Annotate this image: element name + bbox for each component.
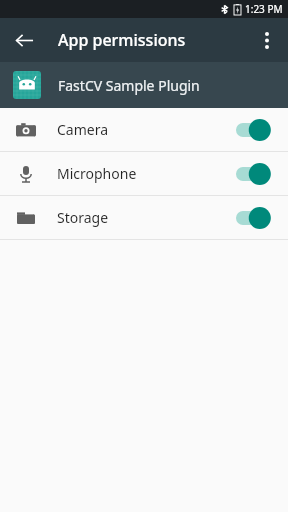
staticText: FastCV Sample Plugin xyxy=(58,76,200,95)
button[interactable]: Toggle permission xyxy=(236,206,274,230)
staticText: 1:23 PM xyxy=(245,2,283,16)
button[interactable]: More options xyxy=(249,22,285,58)
staticText: Storage xyxy=(57,208,109,227)
button[interactable]: FastCV Sample Plugin xyxy=(0,62,288,108)
button[interactable]: Back xyxy=(6,22,42,58)
staticText: App permissions xyxy=(58,29,186,51)
button[interactable]: Camera xyxy=(0,108,288,151)
staticText: Camera xyxy=(57,120,109,139)
button[interactable]: Toggle permission xyxy=(236,118,274,142)
button[interactable]: Microphone xyxy=(0,152,288,195)
staticText: Microphone xyxy=(57,164,137,183)
button[interactable]: Storage xyxy=(0,196,288,239)
button[interactable]: Toggle permission xyxy=(236,162,274,186)
